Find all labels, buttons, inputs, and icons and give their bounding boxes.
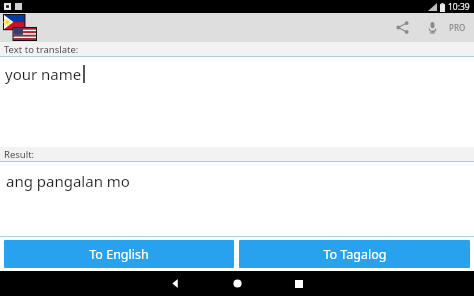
button[interactable]: Language pair Filipino English (3, 14, 37, 41)
staticText: To English (89, 246, 149, 263)
button[interactable]: To Tagalog (239, 240, 470, 268)
button[interactable]: PRO (449, 13, 466, 42)
staticText: ang pangalan mo (6, 171, 130, 191)
button[interactable]: Share (387, 13, 417, 42)
button[interactable]: your name (0, 57, 474, 147)
staticText: your name (5, 64, 82, 84)
button[interactable]: To English (4, 240, 234, 268)
staticText: Result: (4, 148, 35, 161)
button[interactable]: ang pangalan mo (0, 162, 474, 236)
button[interactable]: Recent apps (268, 271, 330, 296)
button[interactable]: Home (206, 271, 268, 296)
button[interactable]: Voice input (417, 13, 447, 42)
staticText: 10:39 (448, 1, 470, 13)
staticText: To Tagalog (323, 246, 387, 263)
staticText: Text to translate: (4, 43, 79, 56)
button[interactable]: Back (144, 271, 206, 296)
staticText: PRO (449, 22, 466, 33)
